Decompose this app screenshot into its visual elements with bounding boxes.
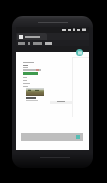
button[interactable] xyxy=(21,133,83,141)
button[interactable]: Pause xyxy=(76,49,83,56)
button[interactable] xyxy=(17,33,47,40)
